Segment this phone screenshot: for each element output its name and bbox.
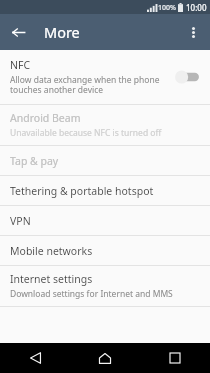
button[interactable]: Home bbox=[70, 343, 140, 373]
staticText: Tap & pay bbox=[10, 154, 59, 168]
button[interactable]: Back bbox=[0, 343, 70, 373]
staticText: Mobile networks bbox=[10, 244, 93, 258]
staticText: 10:00 bbox=[186, 2, 207, 13]
staticText: Internet settings bbox=[10, 272, 93, 286]
staticText: Download settings for Internet and MMS bbox=[10, 288, 173, 300]
button[interactable]: More options bbox=[179, 18, 207, 46]
button[interactable]: VPN bbox=[0, 206, 210, 235]
button[interactable]: NFC bbox=[0, 50, 210, 104]
button[interactable]: Android Beam bbox=[0, 105, 210, 145]
staticText: Android Beam bbox=[10, 111, 81, 125]
button[interactable]: Mobile networks bbox=[0, 236, 210, 265]
button[interactable]: Internet settings bbox=[0, 266, 210, 306]
staticText: VPN bbox=[10, 214, 31, 228]
button[interactable]: Recent apps bbox=[140, 343, 210, 373]
staticText: 100% bbox=[158, 3, 176, 13]
staticText: Unavailable because NFC is turned off bbox=[10, 127, 162, 139]
button[interactable]: NFC toggle, off bbox=[172, 66, 202, 88]
staticText: Allow data exchange when the phone touch… bbox=[10, 74, 166, 96]
staticText: More bbox=[44, 22, 80, 42]
staticText: NFC bbox=[10, 58, 31, 72]
button[interactable]: Tap & pay bbox=[0, 146, 210, 175]
staticText: Tethering & portable hotspot bbox=[10, 184, 154, 198]
button[interactable]: Navigate up bbox=[3, 17, 33, 47]
button[interactable]: Tethering & portable hotspot bbox=[0, 176, 210, 205]
